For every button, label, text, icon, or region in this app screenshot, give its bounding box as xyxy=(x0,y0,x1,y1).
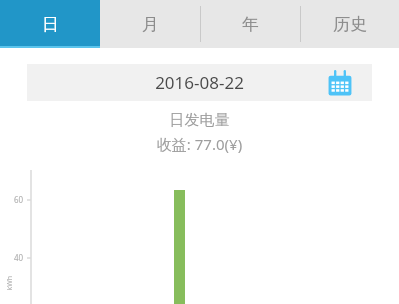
button[interactable]: 历史 xyxy=(300,0,399,48)
staticText: 月 xyxy=(142,14,159,35)
button[interactable]: 月 xyxy=(100,0,200,48)
staticText: 历史 xyxy=(333,14,367,35)
staticText: 年 xyxy=(242,14,259,35)
button[interactable]: 年 xyxy=(200,0,300,48)
staticText: 收益: 77.0(¥) xyxy=(0,134,399,154)
staticText: 2016-08-22 xyxy=(27,71,372,94)
staticText: 日发电量 xyxy=(0,111,399,130)
staticText: 60 xyxy=(14,194,24,205)
staticText: 40 xyxy=(14,252,24,263)
staticText: 日 xyxy=(42,14,59,35)
button[interactable]: 日 xyxy=(0,0,100,48)
staticText: kWh xyxy=(4,275,14,290)
button[interactable]: 2016-08-22 xyxy=(27,64,372,101)
button[interactable]: Pick date xyxy=(325,68,355,98)
